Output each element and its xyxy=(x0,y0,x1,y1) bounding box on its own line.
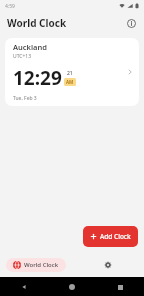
button[interactable]: Home xyxy=(65,280,79,294)
button[interactable]: Auckland xyxy=(5,38,139,106)
staticText: 4:59 xyxy=(5,3,15,10)
button[interactable]: Info xyxy=(123,15,139,31)
staticText: 12:29 xyxy=(13,65,62,91)
button[interactable]: Settings xyxy=(100,257,116,273)
staticText: UTC+13 xyxy=(13,53,32,60)
staticText: World Clock xyxy=(7,16,67,30)
staticText: Tue, Feb 3 xyxy=(13,95,37,102)
staticText: 21 xyxy=(67,70,73,77)
staticText: World Clock xyxy=(24,261,59,269)
button[interactable]: World Clock xyxy=(6,258,66,272)
staticText: Add Clock xyxy=(100,232,131,241)
staticText: AM xyxy=(66,79,74,85)
button[interactable]: Back xyxy=(17,280,31,294)
button[interactable]: Add Clock xyxy=(83,226,138,247)
staticText: Auckland xyxy=(13,42,47,52)
button[interactable]: Recent apps xyxy=(113,280,127,294)
